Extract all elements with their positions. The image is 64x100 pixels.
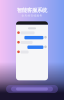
staticText: 智能客服系统 bbox=[17, 7, 47, 14]
staticText: 全天候在线服务 bbox=[21, 14, 42, 17]
